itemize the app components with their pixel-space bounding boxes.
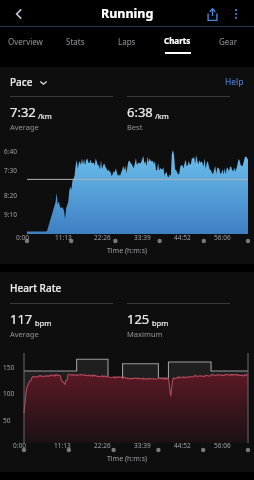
staticText: Heart Rate: [10, 281, 62, 295]
button[interactable]: Charts: [152, 27, 203, 61]
staticText: 125: [127, 310, 150, 328]
button[interactable]: Stats: [50, 27, 101, 61]
staticText: Maximum: [127, 329, 163, 339]
staticText: Average: [10, 122, 39, 132]
staticText: Time (h:m:s): [0, 454, 254, 464]
button[interactable]: Gear: [203, 27, 254, 61]
staticText: Gear: [219, 36, 238, 47]
staticText: /km: [155, 111, 169, 121]
staticText: 7:30: [4, 166, 17, 175]
staticText: Stats: [66, 36, 85, 47]
staticText: 22:26: [94, 441, 111, 450]
staticText: /km: [38, 111, 52, 121]
staticText: 56:06: [214, 233, 231, 242]
staticText: Best: [127, 122, 143, 132]
staticText: 50: [3, 416, 11, 425]
staticText: Overview: [8, 36, 43, 47]
staticText: 56:06: [214, 441, 231, 450]
staticText: Running: [101, 5, 154, 22]
staticText: 33:39: [134, 441, 151, 450]
staticText: 6:40: [4, 147, 17, 156]
staticText: Help: [225, 76, 244, 88]
staticText: 6:38: [127, 103, 153, 121]
staticText: Charts: [164, 35, 191, 46]
staticText: 11:13: [54, 441, 71, 450]
staticText: 0:00: [16, 233, 29, 242]
staticText: Average: [10, 329, 39, 339]
staticText: 44:52: [174, 233, 191, 242]
staticText: 11:13: [55, 233, 72, 242]
staticText: Laps: [118, 36, 136, 47]
staticText: 100: [3, 389, 15, 398]
staticText: 150: [3, 363, 15, 372]
staticText: Time (h:m:s): [0, 246, 254, 256]
button[interactable]: Help: [225, 76, 244, 88]
staticText: 0:00: [13, 441, 26, 450]
button[interactable]: Share: [200, 2, 224, 26]
staticText: bpm: [152, 318, 169, 328]
staticText: 7:32: [10, 103, 36, 121]
staticText: 8:20: [4, 191, 17, 200]
button[interactable]: Laps: [101, 27, 152, 61]
staticText: 44:52: [174, 441, 191, 450]
button[interactable]: Back: [8, 3, 30, 25]
staticText: bpm: [35, 318, 52, 328]
staticText: 22:26: [94, 233, 111, 242]
staticText: 9:10: [4, 210, 17, 219]
button[interactable]: More options: [224, 2, 248, 26]
staticText: 33:39: [134, 233, 151, 242]
button[interactable]: Overview: [0, 27, 50, 61]
button[interactable]: Pace: [10, 75, 48, 89]
staticText: 117: [10, 310, 33, 328]
staticText: Pace: [10, 75, 33, 89]
